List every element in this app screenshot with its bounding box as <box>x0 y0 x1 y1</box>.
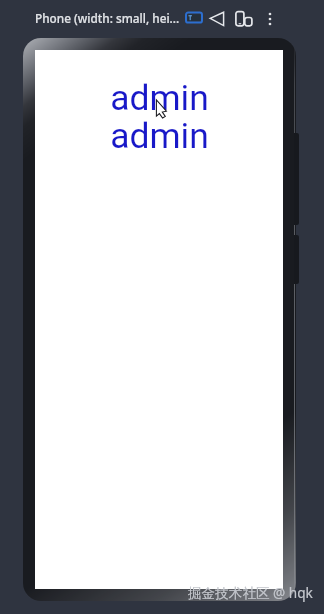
button[interactable]: Run preview <box>208 10 226 28</box>
button[interactable]: Device picker <box>234 9 254 29</box>
button[interactable]: Design mode <box>183 9 205 26</box>
staticText: Phone (width: small, hei... <box>35 10 180 26</box>
button[interactable]: More options <box>264 8 277 30</box>
staticText: admin admin <box>110 77 209 157</box>
staticText: 掘金技术社区 @ hqk <box>188 583 313 602</box>
